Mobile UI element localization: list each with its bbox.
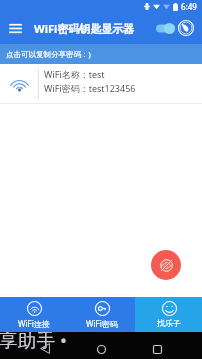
button[interactable]: WiFi密码 [68,297,135,332]
staticText: WiFi密码钥匙显示器 [34,21,135,36]
button[interactable]: Menu [0,12,30,44]
staticText: WiFi名称：test [44,68,105,80]
button[interactable]: Back [35,338,55,358]
staticText: WiFi连接 [18,318,50,329]
button[interactable]: Toggle password display [153,12,177,44]
button[interactable]: Recents [147,339,167,359]
button[interactable]: Hide password [151,250,181,280]
button[interactable]: WiFi名称：test [0,64,202,104]
staticText: 找乐子 [157,318,181,328]
staticText: 享助手 • EEDSHZIZ.COM [0,332,201,352]
button[interactable]: WiFi连接 [0,297,68,332]
staticText: WiFi密码 [86,318,118,329]
button[interactable]: 点击可以复制分享密码：) [0,44,202,64]
button[interactable]: 找乐子 [135,297,202,332]
staticText: WiFi密码：test123456 [44,82,136,94]
staticText: 点击可以复制分享密码：) [6,49,91,59]
button[interactable]: Speed test [177,12,195,44]
button[interactable]: Home [91,339,111,359]
staticText: 6:49 [181,1,197,12]
